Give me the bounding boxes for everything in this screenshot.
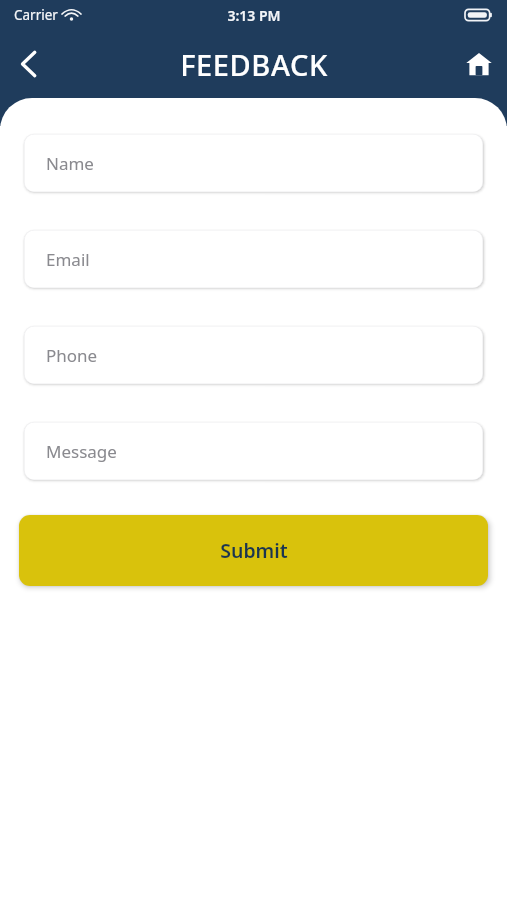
staticText: Name	[46, 152, 94, 175]
staticText: FEEDBACK	[180, 45, 328, 84]
button[interactable]: Home	[451, 36, 507, 92]
staticText: Message	[46, 440, 117, 463]
button[interactable]: Back	[0, 36, 56, 92]
staticText: Submit	[220, 537, 288, 564]
button[interactable]: Phone	[24, 326, 483, 384]
staticText: 3:13 PM	[227, 6, 281, 25]
staticText: Phone	[46, 344, 98, 367]
staticText: Carrier	[14, 6, 58, 24]
button[interactable]: Message	[24, 422, 483, 480]
staticText: Email	[46, 248, 90, 271]
button[interactable]: Name	[24, 134, 483, 192]
button[interactable]: Submit	[19, 515, 488, 586]
button[interactable]: Email	[24, 230, 483, 288]
